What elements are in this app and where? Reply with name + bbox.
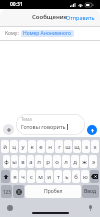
button[interactable]: и <box>45 170 53 183</box>
button[interactable]: Кому: <box>0 27 100 40</box>
staticText: й <box>3 143 7 151</box>
button[interactable]: Emoji <box>6 204 14 212</box>
button[interactable]: у <box>19 140 27 153</box>
staticText: у <box>21 143 25 151</box>
staticText: и <box>47 173 51 181</box>
staticText: ц <box>12 143 16 151</box>
button[interactable]: ю <box>81 170 89 183</box>
staticText: т <box>57 173 60 181</box>
staticText: с <box>30 173 33 181</box>
staticText: Номер Анонимного <box>23 30 72 37</box>
button[interactable]: Send <box>87 125 97 135</box>
staticText: Тема <box>21 116 32 122</box>
button[interactable]: х <box>91 140 99 153</box>
staticText: в <box>21 158 25 166</box>
button[interactable]: 123 <box>1 185 12 198</box>
button[interactable]: э <box>89 155 97 168</box>
staticText: д <box>73 158 77 166</box>
button[interactable]: ч <box>19 170 26 183</box>
staticText: ю <box>83 173 88 181</box>
staticText: Ввод <box>84 188 97 195</box>
button[interactable]: Backspace <box>90 170 99 183</box>
staticText: э <box>92 158 95 166</box>
staticText: е <box>39 143 43 151</box>
button[interactable]: л <box>62 155 70 168</box>
button[interactable]: щ <box>73 140 81 153</box>
staticText: к <box>30 143 34 151</box>
staticText: л <box>64 158 68 166</box>
staticText: ж <box>82 158 87 166</box>
staticText: ф <box>4 158 9 166</box>
button[interactable]: о <box>53 155 61 168</box>
button[interactable]: е <box>37 140 45 153</box>
button[interactable]: д <box>71 155 79 168</box>
staticText: о <box>55 158 59 166</box>
staticText: м <box>38 173 43 181</box>
button[interactable]: Ввод <box>82 185 99 198</box>
staticText: з <box>85 143 88 151</box>
staticText: я <box>13 173 17 181</box>
button[interactable]: Пробел <box>25 185 81 198</box>
staticText: ы <box>12 158 17 166</box>
staticText: Сообщение <box>32 13 68 21</box>
button[interactable]: к <box>28 140 36 153</box>
staticText: Отправить <box>66 14 95 21</box>
button[interactable]: Dictate <box>86 204 94 212</box>
staticText: г <box>58 143 61 151</box>
staticText: а <box>29 158 33 166</box>
button[interactable]: в <box>19 155 26 168</box>
button[interactable]: т <box>54 170 62 183</box>
button[interactable]: з <box>82 140 90 153</box>
button[interactable]: ь <box>63 170 71 183</box>
staticText: щ <box>74 143 80 151</box>
button[interactable]: Shift <box>1 170 10 183</box>
staticText: р <box>46 158 50 166</box>
staticText: ч <box>21 173 25 181</box>
staticText: 123 <box>3 189 11 195</box>
button[interactable]: Отправить <box>61 11 100 24</box>
button[interactable]: с <box>27 170 35 183</box>
button[interactable]: ж <box>80 155 88 168</box>
button[interactable]: Add attachment <box>3 124 14 135</box>
staticText: Кому: <box>5 30 19 37</box>
button[interactable]: б <box>72 170 80 183</box>
staticText: п <box>37 158 41 166</box>
button[interactable]: й <box>1 140 9 153</box>
staticText: ш <box>65 143 71 151</box>
button[interactable]: ы <box>11 155 18 168</box>
staticText: ь <box>65 173 69 181</box>
button[interactable]: ш <box>64 140 72 153</box>
button[interactable]: м <box>36 170 44 183</box>
staticText: х <box>93 143 97 151</box>
button[interactable]: а <box>27 155 34 168</box>
staticText: б <box>74 173 78 181</box>
button[interactable]: Switch language <box>13 185 24 198</box>
button[interactable]: р <box>44 155 52 168</box>
button[interactable]: н <box>46 140 54 153</box>
staticText: Готовы говорить <box>21 123 66 130</box>
button[interactable]: г <box>55 140 63 153</box>
button[interactable]: ф <box>3 155 10 168</box>
staticText: Пробел <box>44 188 63 195</box>
button[interactable]: я <box>11 170 18 183</box>
button[interactable]: ц <box>10 140 18 153</box>
button[interactable]: п <box>35 155 43 168</box>
staticText: 00:31 <box>10 1 23 8</box>
staticText: н <box>48 143 52 151</box>
